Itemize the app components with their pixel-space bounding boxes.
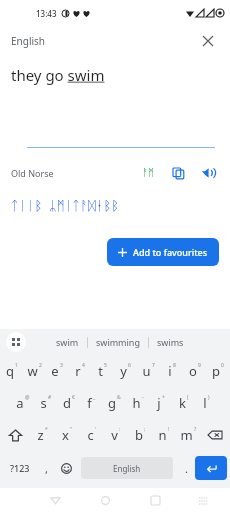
staticText: ! xyxy=(168,426,170,433)
staticText: # xyxy=(48,394,52,401)
staticText: s xyxy=(40,394,47,412)
button[interactable]: f xyxy=(80,387,103,419)
staticText: 6 xyxy=(128,362,131,369)
button[interactable]: p xyxy=(206,355,229,387)
staticText: " xyxy=(70,426,73,433)
button[interactable]: g xyxy=(103,387,126,419)
staticText: ? xyxy=(194,426,197,433)
button[interactable]: v xyxy=(104,419,128,451)
button[interactable]: Shift xyxy=(0,419,30,451)
staticText: ' xyxy=(95,426,97,433)
button[interactable]: e xyxy=(45,355,68,387)
staticText: p xyxy=(212,362,220,380)
staticText: d xyxy=(63,394,71,412)
button[interactable]: Back xyxy=(44,489,66,511)
button[interactable]: t xyxy=(91,355,114,387)
staticText: swim xyxy=(56,336,79,348)
staticText: y xyxy=(120,362,127,380)
button[interactable]: , xyxy=(37,451,55,485)
button[interactable]: . xyxy=(177,451,195,485)
button[interactable]: Backspace xyxy=(200,419,230,451)
button[interactable]: Copy xyxy=(167,162,189,184)
button[interactable]: Toolbar xyxy=(6,332,26,352)
staticText: c xyxy=(87,426,94,444)
staticText: they go swim xyxy=(11,65,105,85)
staticText: English xyxy=(113,463,141,474)
staticText: - xyxy=(142,394,144,401)
button[interactable]: ?123 xyxy=(3,451,37,485)
button[interactable]: Close xyxy=(197,30,219,52)
button[interactable]: Add to favourites xyxy=(107,238,219,266)
button[interactable]: Listen xyxy=(197,162,219,184)
staticText: g xyxy=(108,394,116,412)
button[interactable]: d xyxy=(57,387,80,419)
button[interactable]: k xyxy=(172,387,195,419)
button[interactable]: Runic script xyxy=(137,162,159,184)
button[interactable]: r xyxy=(68,355,91,387)
staticText: * xyxy=(45,426,48,433)
staticText: k xyxy=(179,394,186,412)
button[interactable]: a xyxy=(12,387,34,419)
staticText: Old Norse xyxy=(11,167,54,179)
button[interactable]: swims xyxy=(149,332,192,352)
staticText: u xyxy=(142,362,151,380)
button[interactable]: s xyxy=(34,387,57,419)
staticText: ᛏᛁᛁᛒ ᛦᛗᛁᛏᚨᛞᛂᛒᛒ xyxy=(11,196,120,214)
staticText: 5 xyxy=(104,362,107,369)
button[interactable]: z xyxy=(30,419,55,451)
staticText: 2 xyxy=(39,362,42,369)
button[interactable]: c xyxy=(80,419,104,451)
staticText: q xyxy=(6,362,14,380)
staticText: ) xyxy=(208,394,210,401)
staticText: v xyxy=(111,426,118,444)
button[interactable]: Recents xyxy=(144,489,166,511)
staticText: w xyxy=(27,362,38,380)
button[interactable]: Home xyxy=(94,489,116,511)
staticText: € xyxy=(72,394,75,401)
button[interactable]: Enter xyxy=(195,456,227,480)
staticText: ?123 xyxy=(10,462,30,474)
button[interactable]: q xyxy=(1,355,23,387)
button[interactable]: Switch keyboard xyxy=(192,489,214,511)
staticText: 4 xyxy=(82,362,85,369)
button[interactable]: x xyxy=(55,419,80,451)
button[interactable]: i xyxy=(160,355,183,387)
staticText: m xyxy=(180,426,193,444)
button[interactable]: l xyxy=(195,387,218,419)
button[interactable]: b xyxy=(128,419,152,451)
button[interactable]: w xyxy=(23,355,45,387)
button[interactable]: swimming xyxy=(88,332,148,352)
button[interactable]: English xyxy=(81,457,173,479)
staticText: e xyxy=(51,362,59,380)
staticText: : xyxy=(119,426,121,433)
button[interactable]: o xyxy=(183,355,206,387)
staticText: ( xyxy=(187,394,189,401)
staticText: _ xyxy=(93,394,96,401)
staticText: 8 xyxy=(173,362,176,369)
button[interactable]: u xyxy=(137,355,160,387)
button[interactable]: h xyxy=(126,387,149,419)
button[interactable]: j xyxy=(149,387,172,419)
button[interactable]: Emoji xyxy=(55,451,77,485)
staticText: h xyxy=(132,394,141,412)
staticText: English xyxy=(11,34,46,48)
staticText: ᚨᛗ xyxy=(142,168,154,178)
staticText: ; xyxy=(144,426,146,433)
staticText: t xyxy=(98,362,103,380)
staticText: + xyxy=(162,394,165,401)
staticText: swimming xyxy=(96,336,140,348)
button[interactable]: n xyxy=(152,419,176,451)
staticText: Add to favourites xyxy=(133,246,208,258)
staticText: a xyxy=(16,394,24,412)
staticText: 13:43 xyxy=(36,8,57,19)
staticText: swims xyxy=(157,336,184,348)
staticText: z xyxy=(37,426,44,444)
staticText: o xyxy=(189,362,197,380)
button[interactable]: swim xyxy=(48,332,87,352)
button[interactable]: y xyxy=(114,355,137,387)
staticText: n xyxy=(158,426,167,444)
staticText: 7 xyxy=(152,362,155,369)
staticText: x xyxy=(62,426,69,444)
button[interactable]: m xyxy=(176,419,200,451)
staticText: f xyxy=(87,394,92,412)
